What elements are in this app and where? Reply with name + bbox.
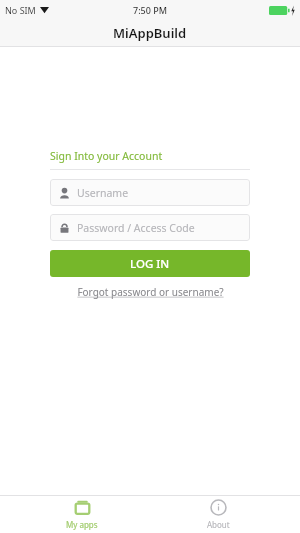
button[interactable]: Password / Access Code [50,214,250,241]
staticText: Password / Access Code [77,221,195,235]
staticText: About [207,519,230,530]
staticText: No SIM [5,4,36,16]
staticText: Forgot password or username? [77,285,224,299]
staticText: 7:50 PM [133,4,167,16]
staticText: Username [77,186,129,200]
staticText: My apps [66,519,98,530]
staticText: Sign Into your Account [50,149,163,163]
button[interactable]: Forgot password or username? [50,285,250,299]
button[interactable]: About [163,496,273,533]
staticText: MiAppBuild [113,24,187,42]
button[interactable]: LOG IN [50,250,250,277]
button[interactable]: My apps [27,496,137,533]
button[interactable]: Username [50,179,250,206]
staticText: LOG IN [130,256,170,272]
